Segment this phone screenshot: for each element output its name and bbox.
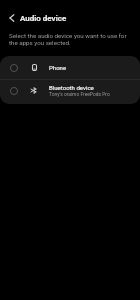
staticText: Tony's oraimo FreePods Pro bbox=[49, 91, 110, 97]
staticText: Audio device bbox=[20, 14, 67, 23]
button[interactable]: Phone bbox=[0, 56, 140, 79]
staticText: Phone bbox=[49, 64, 67, 71]
button[interactable]: Back bbox=[3, 9, 21, 27]
staticText: Select the audio device you want to use … bbox=[9, 32, 129, 47]
staticText: Bluetooth device bbox=[49, 84, 94, 91]
button[interactable]: Bluetooth device bbox=[0, 80, 140, 104]
